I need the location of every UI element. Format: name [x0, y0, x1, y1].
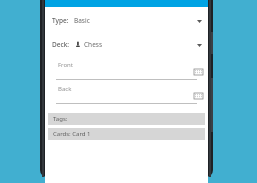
- button[interactable]: Tags:: [48, 113, 205, 125]
- button[interactable]: Input method for Back: [193, 92, 204, 100]
- button[interactable]: Input method for Front: [193, 68, 204, 76]
- button[interactable]: Type:: [45, 13, 208, 28]
- staticText: Type:: [52, 16, 69, 25]
- button[interactable]: Back: [45, 84, 208, 104]
- staticText: Front: [58, 61, 73, 69]
- staticText: Deck:: [52, 40, 70, 49]
- button[interactable]: Cards: Card 1: [48, 128, 205, 140]
- staticText: Back: [58, 85, 72, 93]
- staticText: Tags:: [53, 115, 68, 123]
- button[interactable]: Open Type: dropdown: [193, 15, 205, 27]
- staticText: Basic: [74, 16, 90, 25]
- button[interactable]: Deck:: [45, 37, 208, 52]
- button[interactable]: Open Deck: dropdown: [193, 39, 205, 51]
- button[interactable]: Front: [45, 60, 208, 80]
- staticText: Cards: Card 1: [53, 130, 91, 138]
- staticText: Chess: [84, 40, 103, 49]
